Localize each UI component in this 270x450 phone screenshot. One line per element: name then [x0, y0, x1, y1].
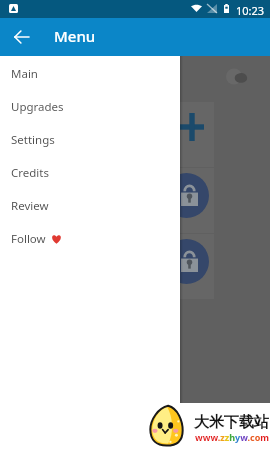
staticText: www.zzhyw.com	[195, 431, 270, 443]
button[interactable]	[118, 168, 214, 233]
button[interactable]: Locked item	[164, 173, 209, 218]
button[interactable]: Locked item	[164, 239, 209, 284]
button[interactable]: Credits	[0, 156, 180, 189]
button[interactable]	[118, 234, 214, 299]
staticText: Main	[11, 66, 38, 82]
button[interactable]: Upgrades	[0, 90, 180, 123]
staticText: Follow	[11, 231, 46, 247]
button[interactable]: Main	[0, 57, 180, 90]
button[interactable]: Settings	[0, 123, 180, 156]
staticText: Upgrades	[11, 99, 64, 115]
staticText: Menu	[54, 26, 96, 46]
staticText: Credits	[11, 165, 49, 181]
staticText: Review	[11, 198, 49, 214]
button[interactable]: Follow	[0, 222, 180, 255]
staticText: 大米下载站	[194, 413, 269, 432]
staticText: 10:23	[236, 3, 265, 18]
button[interactable]	[118, 102, 214, 167]
button[interactable]: Back	[9, 24, 34, 49]
button[interactable]: Review	[0, 189, 180, 222]
staticText: Settings	[11, 132, 55, 148]
